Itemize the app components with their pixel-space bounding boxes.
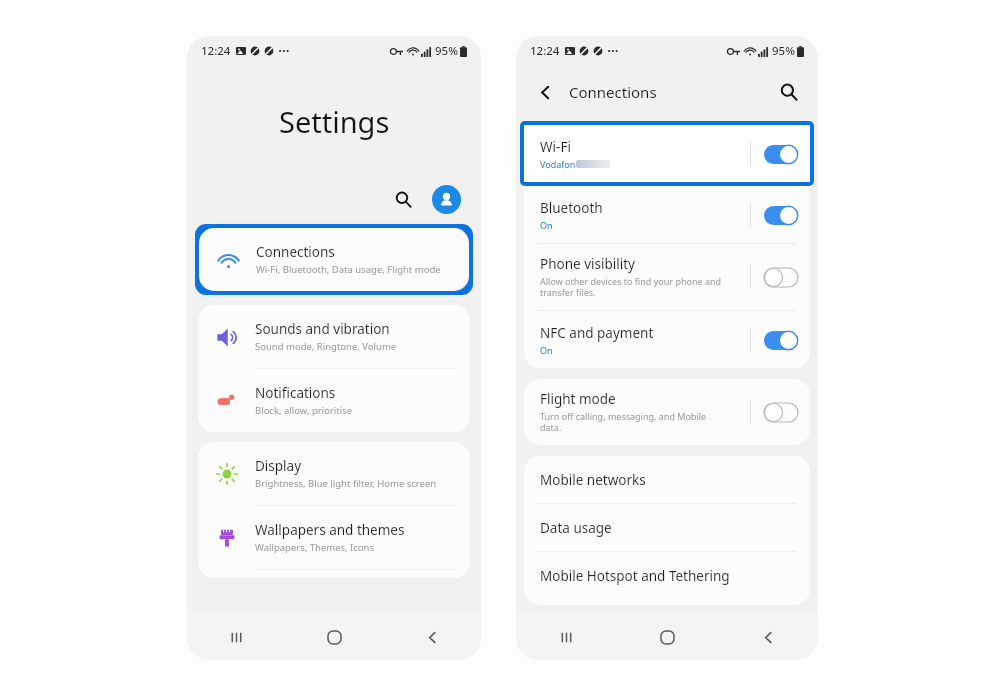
button[interactable]: Wi-Fi toggle: [762, 142, 800, 166]
staticText: Display: [255, 457, 302, 475]
button[interactable]: Home: [645, 615, 689, 659]
staticText: Allow other devices to find your phone a…: [540, 275, 722, 299]
staticText: Wallpapers, Themes, Icons: [255, 541, 375, 554]
button[interactable]: Account: [432, 185, 461, 214]
staticText: Bluetooth: [540, 199, 603, 217]
button[interactable]: Data usage: [524, 504, 810, 551]
button[interactable]: Wi-Fi: [524, 125, 810, 182]
button[interactable]: Notifications: [198, 369, 470, 432]
staticText: On: [540, 219, 553, 231]
staticText: Phone visibility: [540, 255, 635, 273]
staticText: Turn off calling, messaging, and Mobile …: [540, 410, 707, 434]
staticText: Data usage: [540, 519, 612, 537]
staticText: Wi-Fi: [540, 138, 571, 156]
staticText: On: [540, 344, 553, 356]
button[interactable]: Display: [198, 442, 470, 505]
staticText: 95%: [435, 43, 458, 59]
button[interactable]: NFC and payment toggle: [762, 328, 800, 352]
button[interactable]: Home: [312, 615, 356, 659]
staticText: Sounds and vibration: [255, 320, 390, 338]
staticText: Connections: [256, 243, 335, 261]
button[interactable]: Wallpapers and themes: [198, 506, 470, 569]
staticText: Sound mode, Ringtone, Volume: [255, 340, 397, 353]
staticText: 12:24: [530, 43, 560, 59]
button[interactable]: Recents: [214, 615, 258, 659]
button[interactable]: Search: [774, 77, 804, 107]
staticText: NFC and payment: [540, 324, 654, 342]
staticText: Vodafon: [540, 158, 576, 170]
button[interactable]: Phone visibility: [524, 244, 810, 310]
button[interactable]: Flight mode: [524, 379, 810, 445]
button[interactable]: Mobile Hotspot and Tethering: [524, 552, 810, 599]
button[interactable]: Mobile networks: [524, 456, 810, 503]
button[interactable]: Phone visibility toggle: [762, 265, 800, 289]
button[interactable]: Connections: [199, 228, 469, 291]
staticText: Block, allow, prioritise: [255, 404, 353, 417]
button[interactable]: NFC and payment: [524, 311, 810, 368]
button[interactable]: Bluetooth toggle: [762, 203, 800, 227]
staticText: Wallpapers and themes: [255, 521, 405, 539]
staticText: Notifications: [255, 384, 336, 402]
button[interactable]: Back: [410, 615, 454, 659]
staticText: Mobile networks: [540, 471, 646, 489]
staticText: Settings: [279, 102, 390, 141]
button[interactable]: Flight mode toggle: [762, 400, 800, 424]
button[interactable]: Search: [387, 183, 419, 215]
staticText: Mobile Hotspot and Tethering: [540, 567, 730, 585]
staticText: 12:24: [201, 43, 231, 59]
button[interactable]: Back: [746, 615, 790, 659]
staticText: Wi-Fi, Bluetooth, Data usage, Flight mod…: [256, 263, 441, 276]
button[interactable]: Recents: [544, 615, 588, 659]
button[interactable]: Sounds and vibration: [198, 305, 470, 368]
button[interactable]: Back: [530, 77, 560, 107]
staticText: Flight mode: [540, 390, 616, 408]
staticText: Brightness, Blue light filter, Home scre…: [255, 477, 437, 490]
button[interactable]: Bluetooth: [524, 186, 810, 243]
staticText: Connections: [569, 82, 657, 102]
staticText: 95%: [772, 43, 795, 59]
